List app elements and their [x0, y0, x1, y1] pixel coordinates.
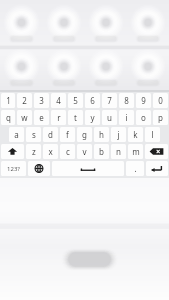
button[interactable]: j: [111, 127, 126, 142]
button[interactable]: z: [26, 144, 41, 159]
staticText: g: [82, 129, 87, 140]
staticText: o: [141, 112, 146, 123]
button[interactable]: Change language: [28, 161, 50, 176]
staticText: l: [151, 129, 154, 140]
button[interactable]: 123?: [1, 161, 26, 176]
staticText: f: [66, 129, 69, 140]
button[interactable]: s: [26, 127, 41, 142]
staticText: j: [117, 129, 120, 140]
button[interactable]: 6: [85, 93, 100, 108]
staticText: 9: [141, 95, 146, 106]
staticText: v: [82, 146, 87, 157]
button[interactable]: k: [128, 127, 143, 142]
staticText: 0: [158, 95, 163, 106]
staticText: r: [57, 112, 61, 123]
button[interactable]: x: [43, 144, 58, 159]
button[interactable]: c: [60, 144, 75, 159]
staticText: 8: [124, 95, 129, 106]
staticText: t: [74, 112, 77, 123]
button[interactable]: r: [51, 110, 66, 125]
button[interactable]: .: [126, 161, 144, 176]
button[interactable]: 3: [34, 93, 49, 108]
button[interactable]: 8: [119, 93, 134, 108]
button[interactable]: u: [102, 110, 117, 125]
staticText: 1: [6, 95, 11, 106]
button[interactable]: l: [145, 127, 160, 142]
button[interactable]: Space: [52, 161, 124, 176]
staticText: 2: [22, 95, 27, 106]
button[interactable]: 7: [102, 93, 117, 108]
button[interactable]: f: [60, 127, 75, 142]
staticText: 3: [39, 95, 44, 106]
staticText: p: [158, 112, 163, 123]
staticText: e: [39, 112, 44, 123]
staticText: i: [125, 112, 128, 123]
staticText: y: [90, 112, 95, 123]
button[interactable]: d: [43, 127, 58, 142]
button[interactable]: y: [85, 110, 100, 125]
staticText: b: [99, 146, 104, 157]
staticText: x: [48, 146, 53, 157]
button[interactable]: n: [111, 144, 126, 159]
button[interactable]: w: [17, 110, 32, 125]
staticText: 6: [90, 95, 95, 106]
staticText: c: [66, 146, 70, 157]
button[interactable]: Backspace: [145, 144, 168, 159]
staticText: 7: [107, 95, 112, 106]
button[interactable]: i: [119, 110, 134, 125]
staticText: w: [21, 112, 28, 123]
button[interactable]: 9: [136, 93, 151, 108]
staticText: .: [134, 163, 137, 174]
button[interactable]: Enter: [146, 161, 168, 176]
button[interactable]: 0: [153, 93, 168, 108]
staticText: a: [14, 129, 19, 140]
button[interactable]: 2: [17, 93, 32, 108]
staticText: n: [116, 146, 121, 157]
button[interactable]: 4: [51, 93, 66, 108]
button[interactable]: v: [77, 144, 92, 159]
staticText: m: [132, 146, 140, 157]
staticText: d: [48, 129, 53, 140]
staticText: 5: [73, 95, 78, 106]
button[interactable]: p: [153, 110, 168, 125]
button[interactable]: e: [34, 110, 49, 125]
staticText: h: [99, 129, 104, 140]
staticText: k: [133, 129, 138, 140]
staticText: 4: [56, 95, 61, 106]
button[interactable]: q: [1, 110, 15, 125]
staticText: q: [6, 112, 11, 123]
button[interactable]: h: [94, 127, 109, 142]
button[interactable]: t: [68, 110, 83, 125]
staticText: s: [32, 129, 36, 140]
button[interactable]: m: [128, 144, 143, 159]
staticText: u: [107, 112, 112, 123]
button[interactable]: a: [9, 127, 24, 142]
staticText: z: [32, 146, 36, 157]
button[interactable]: 5: [68, 93, 83, 108]
button[interactable]: o: [136, 110, 151, 125]
button[interactable]: g: [77, 127, 92, 142]
staticText: 123?: [7, 165, 20, 173]
button[interactable]: 1: [1, 93, 15, 108]
button[interactable]: b: [94, 144, 109, 159]
button[interactable]: Shift: [1, 144, 24, 159]
